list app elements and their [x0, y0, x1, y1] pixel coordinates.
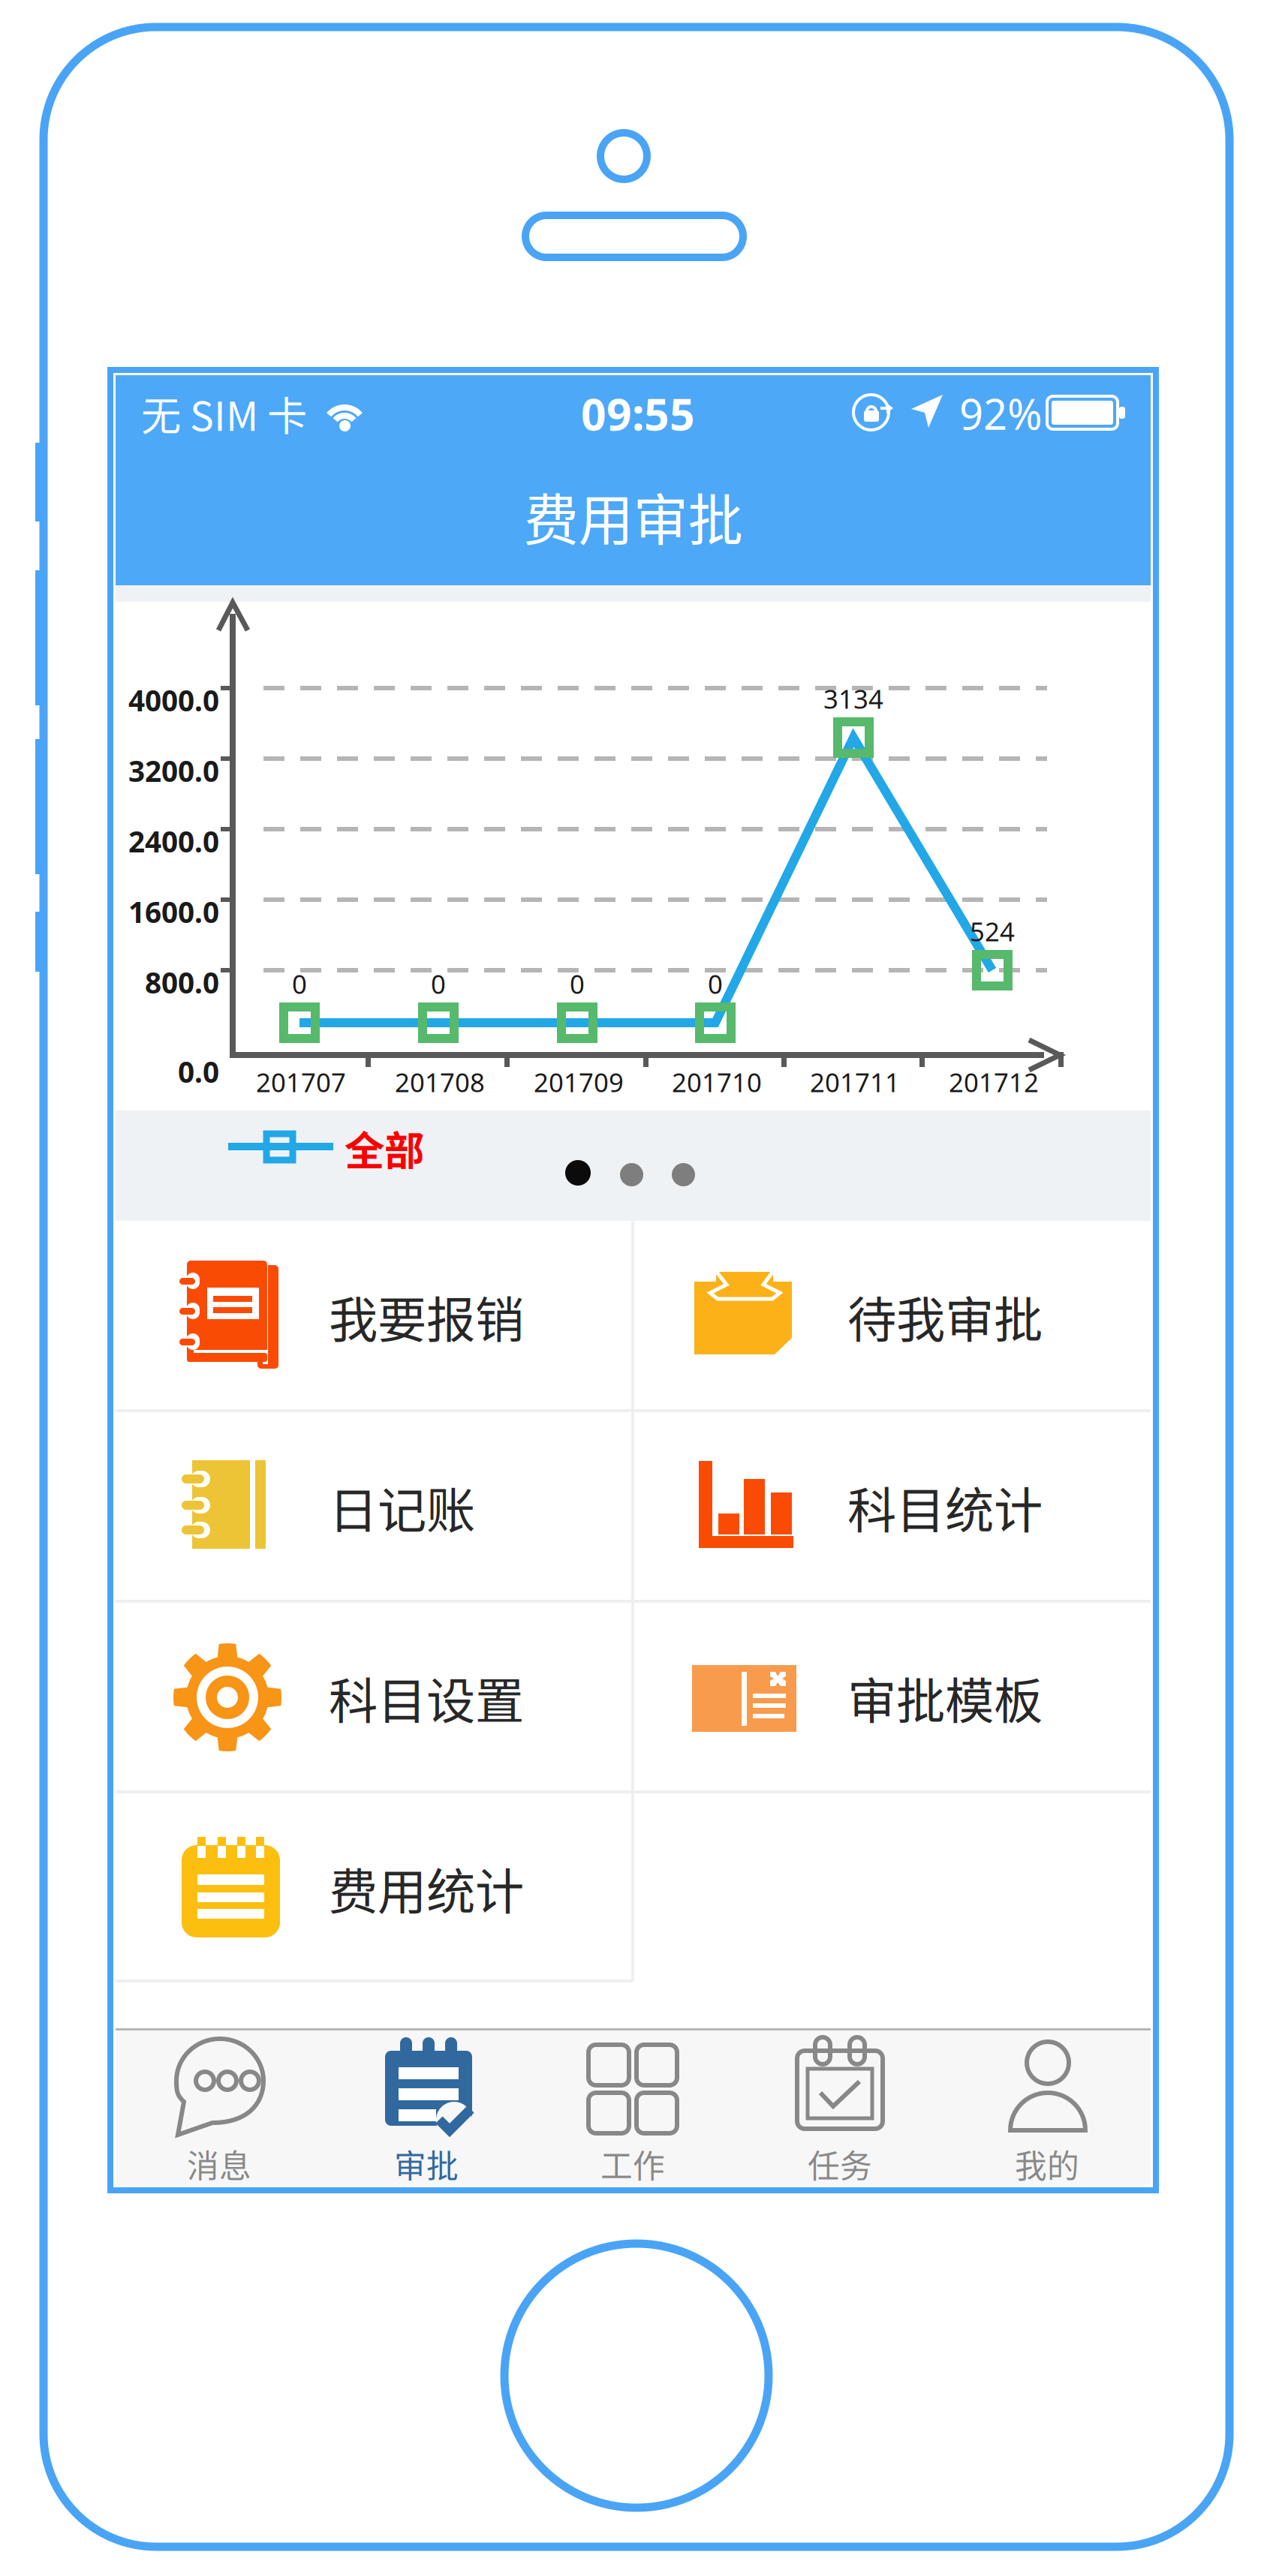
staticText: 524: [970, 914, 1015, 948]
staticText: 审批模板: [847, 1662, 1043, 1733]
staticText: 201711: [810, 1065, 900, 1099]
staticText: 工作: [600, 2141, 665, 2187]
button[interactable]: 科目统计: [634, 1411, 1151, 1602]
staticText: 2400.0: [128, 822, 219, 860]
button[interactable]: 审批模板: [634, 1602, 1151, 1793]
button[interactable]: 任务: [736, 2030, 943, 2185]
staticText: 科目设置: [329, 1662, 524, 1733]
staticText: 科目统计: [847, 1471, 1043, 1542]
button[interactable]: 科目设置: [116, 1602, 632, 1793]
staticText: 待我审批: [847, 1281, 1043, 1352]
staticText: 09:55: [581, 384, 695, 443]
staticText: 3134: [823, 681, 883, 716]
staticText: 消息: [187, 2141, 251, 2187]
staticText: 我的: [1015, 2141, 1079, 2187]
staticText: 92%: [959, 386, 1043, 441]
button[interactable]: 消息: [116, 2030, 323, 2185]
staticText: 0: [431, 966, 446, 1001]
staticText: 3200.0: [128, 751, 219, 790]
button[interactable]: 我要报销: [116, 1221, 632, 1411]
staticText: 0: [570, 966, 585, 1001]
staticText: 800.0: [145, 963, 219, 1001]
button[interactable]: 工作: [529, 2030, 736, 2185]
button[interactable]: 审批: [323, 2030, 530, 2185]
staticText: 0: [292, 966, 307, 1001]
staticText: 日记账: [329, 1471, 475, 1542]
staticText: 任务: [808, 2141, 872, 2187]
staticText: 费用统计: [329, 1852, 524, 1923]
staticText: 审批: [394, 2141, 459, 2187]
staticText: 4000.0: [128, 681, 219, 719]
staticText: 201712: [949, 1065, 1039, 1099]
staticText: 全部: [345, 1119, 424, 1177]
button[interactable]: 待我审批: [634, 1221, 1151, 1411]
button[interactable]: 日记账: [116, 1411, 632, 1602]
button[interactable]: 费用统计: [116, 1793, 632, 1983]
staticText: 201709: [534, 1065, 624, 1099]
staticText: 201707: [256, 1065, 346, 1099]
staticText: 费用审批: [524, 476, 743, 556]
staticText: 1600.0: [128, 892, 219, 931]
staticText: 0: [708, 966, 723, 1001]
staticText: 201710: [672, 1065, 762, 1099]
staticText: 0.0: [178, 1052, 219, 1091]
button[interactable]: 我的: [943, 2030, 1151, 2185]
staticText: 201708: [395, 1065, 485, 1099]
staticText: 无 SIM 卡: [141, 384, 307, 442]
staticText: 我要报销: [329, 1281, 524, 1352]
